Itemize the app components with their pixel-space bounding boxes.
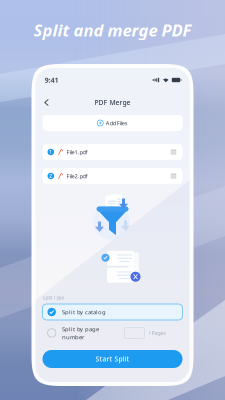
staticText: File2.pdf (67, 172, 88, 180)
staticText: / Pages (148, 329, 166, 337)
button[interactable]: Split by catalog (42, 304, 182, 320)
button[interactable]: 2 (42, 168, 182, 184)
staticText: Add Files (106, 119, 128, 127)
button[interactable]: 1 (42, 144, 182, 160)
staticText: 2 (49, 173, 52, 179)
button[interactable]: Back (39, 95, 53, 109)
staticText: File1.pdf (67, 148, 88, 156)
staticText: Split by page number (62, 325, 99, 341)
staticText: PDF Merge (94, 98, 130, 107)
button[interactable]: Split by page number (42, 325, 182, 341)
button[interactable]: Add Files (42, 115, 182, 131)
staticText: Start Split (95, 354, 129, 364)
button[interactable]: Start Split (42, 350, 182, 368)
staticText: 1 (49, 149, 52, 155)
staticText: Split by catalog (62, 308, 106, 316)
staticText: 9:41 (44, 75, 58, 85)
staticText: Split and merge PDF (33, 19, 191, 41)
staticText: Split Type (42, 294, 64, 301)
